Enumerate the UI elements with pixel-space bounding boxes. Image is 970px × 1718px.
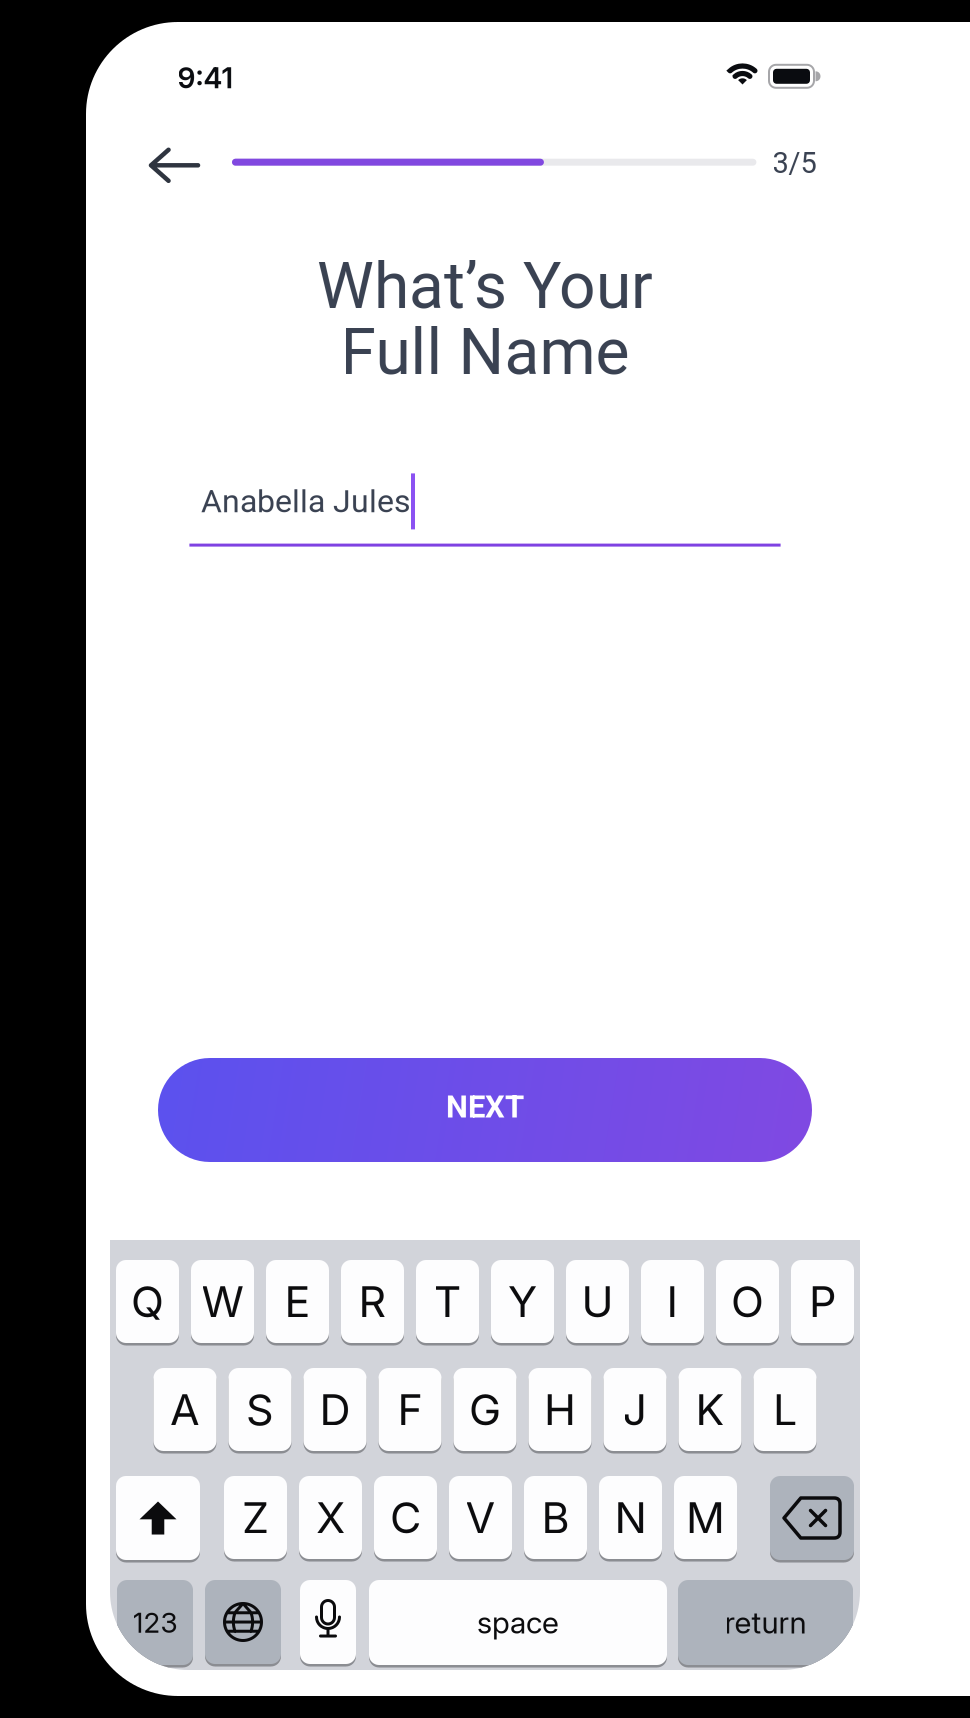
button[interactable]: S [228,1368,291,1451]
button[interactable]: G [453,1368,516,1451]
staticText: O [731,1275,764,1327]
button[interactable]: 123 [117,1580,193,1665]
button[interactable]: C [374,1476,437,1559]
staticText: B [541,1491,569,1543]
button[interactable]: X [299,1476,362,1559]
button[interactable]: J [603,1368,666,1451]
button[interactable]: return [678,1580,853,1665]
button[interactable]: N [599,1476,662,1559]
staticText: 123 [132,1606,177,1639]
button[interactable]: NEXT [158,1058,812,1162]
staticText: 3/5 [772,146,816,180]
staticText: E [284,1275,310,1327]
staticText: K [695,1383,724,1435]
staticText: V [465,1491,495,1543]
staticText: Full Name [340,314,629,389]
button[interactable]: Full name text field [189,473,781,547]
staticText: NEXT [446,1089,524,1125]
staticText: W [201,1275,243,1327]
staticText: What’s Your [317,248,653,323]
staticText: Y [508,1275,537,1327]
button[interactable]: F [378,1368,441,1451]
button[interactable]: W [191,1260,254,1343]
staticText: C [390,1491,421,1543]
button[interactable]: B [524,1476,587,1559]
staticText: G [469,1383,501,1435]
button[interactable]: Back [148,145,200,185]
button[interactable]: A [153,1368,216,1451]
staticText: 9:41 [177,61,233,95]
button[interactable]: Dictate [300,1580,356,1664]
staticText: J [622,1383,647,1435]
button[interactable]: Q [116,1260,179,1343]
button[interactable]: U [566,1260,629,1343]
button[interactable]: Z [224,1476,287,1559]
button[interactable]: P [791,1260,854,1343]
staticText: X [316,1491,345,1543]
button[interactable]: V [449,1476,512,1559]
button[interactable]: O [716,1260,779,1343]
button[interactable]: D [303,1368,366,1451]
staticText: return [724,1604,806,1641]
button[interactable]: M [674,1476,737,1559]
button[interactable]: Next keyboard [205,1580,281,1664]
button[interactable]: Shift [116,1476,200,1560]
button[interactable]: T [416,1260,479,1343]
button[interactable]: Delete [770,1476,854,1560]
button[interactable]: K [678,1368,741,1451]
staticText: T [433,1275,461,1327]
staticText: Q [131,1275,164,1327]
staticText: N [614,1491,646,1543]
button[interactable]: I [641,1260,704,1343]
staticText: H [544,1383,576,1435]
staticText: S [246,1383,274,1435]
staticText: P [809,1275,836,1327]
staticText: F [397,1383,422,1435]
button[interactable]: L [753,1368,816,1451]
staticText: A [170,1383,200,1435]
staticText: Anabella Jules [201,483,411,520]
button[interactable]: E [266,1260,329,1343]
staticText: D [319,1383,350,1435]
staticText: R [358,1275,386,1327]
button[interactable]: Y [491,1260,554,1343]
staticText: space [477,1604,559,1641]
button[interactable]: H [528,1368,591,1451]
staticText: I [666,1275,678,1327]
staticText: M [686,1491,725,1543]
button[interactable]: space [369,1580,667,1665]
staticText: Z [242,1491,269,1543]
staticText: U [581,1275,613,1327]
button[interactable]: R [341,1260,404,1343]
staticText: L [773,1383,797,1435]
